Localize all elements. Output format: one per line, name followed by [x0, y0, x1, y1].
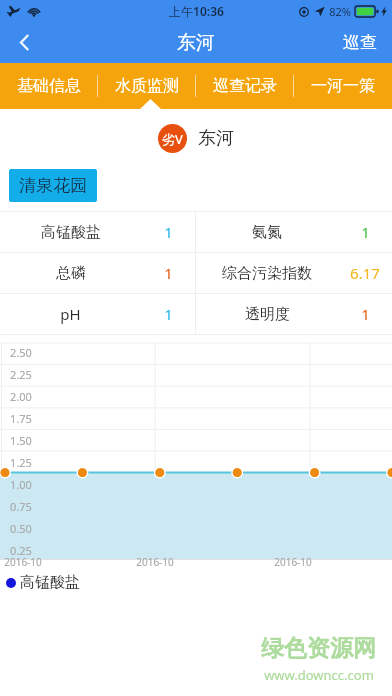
staticText: 0.50	[10, 521, 32, 536]
staticText: 绿色资源网	[261, 634, 376, 663]
staticText: 水质监测	[115, 76, 179, 96]
staticText: 劣V	[162, 130, 183, 148]
staticText: 0.25	[10, 543, 32, 558]
staticText: 高锰酸盐	[41, 223, 101, 242]
button[interactable]: 透明度	[196, 294, 392, 334]
staticText: 2.25	[10, 367, 32, 382]
staticText: 一河一策	[311, 76, 375, 96]
staticText: 1.25	[10, 455, 32, 470]
staticText: 东河	[177, 31, 215, 55]
staticText: 综合污染指数	[222, 264, 312, 283]
button[interactable]: 高锰酸盐	[0, 212, 195, 252]
staticText: 东河	[198, 127, 234, 150]
button[interactable]: 巡查	[328, 22, 392, 63]
staticText: 总磷	[56, 264, 86, 283]
staticText: 上午10:36	[169, 3, 224, 19]
staticText: 1	[164, 263, 173, 283]
button[interactable]: 氨氮	[196, 212, 392, 252]
staticText: 1.50	[10, 433, 32, 448]
staticText: 2016-10	[274, 555, 312, 569]
staticText: 氨氮	[252, 223, 282, 242]
staticText: 巡查记录	[213, 76, 277, 96]
button[interactable]: 基础信息	[0, 63, 98, 109]
button[interactable]: 清泉花园	[9, 169, 97, 202]
staticText: 1	[164, 222, 173, 242]
button[interactable]: 巡查记录	[196, 63, 294, 109]
staticText: 2016-10	[4, 555, 42, 569]
staticText: 巡查	[343, 32, 377, 53]
button[interactable]: 总磷	[0, 253, 195, 293]
staticText: 2016-10	[136, 555, 174, 569]
staticText: 1.75	[10, 411, 32, 426]
staticText: 高锰酸盐	[20, 573, 80, 592]
staticText: 2.00	[10, 389, 32, 404]
staticText: 基础信息	[17, 76, 81, 96]
button[interactable]: Back	[0, 22, 50, 63]
staticText: 1	[361, 304, 370, 324]
staticText: 82%	[329, 4, 351, 19]
staticText: 0.75	[10, 499, 32, 514]
staticText: 6.17	[350, 263, 380, 283]
staticText: 透明度	[245, 305, 290, 324]
staticText: pH	[60, 304, 81, 324]
staticText: 2.50	[10, 345, 32, 360]
button[interactable]: 综合污染指数	[196, 253, 392, 293]
staticText: 清泉花园	[19, 175, 87, 196]
staticText: 1.00	[10, 477, 32, 492]
button[interactable]: 一河一策	[294, 63, 392, 109]
button[interactable]: pH	[0, 294, 195, 334]
staticText: 1	[361, 222, 370, 242]
staticText: 1	[164, 304, 173, 324]
button[interactable]: 水质监测	[98, 63, 196, 109]
staticText: www.downcc.com	[264, 666, 374, 684]
